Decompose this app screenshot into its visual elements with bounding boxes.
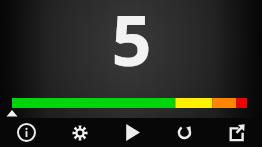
button[interactable]: Share	[210, 118, 262, 147]
button[interactable]: Start	[106, 118, 158, 147]
staticText: 5	[111, 0, 152, 86]
button[interactable]: Settings	[53, 118, 106, 147]
button[interactable]: Info	[0, 118, 53, 147]
button[interactable]: Reset	[158, 118, 210, 147]
